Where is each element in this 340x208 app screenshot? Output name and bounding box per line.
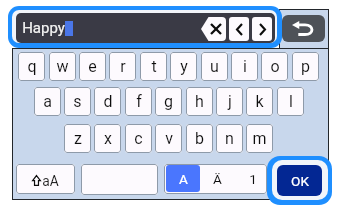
staticText: Ä bbox=[213, 171, 222, 187]
staticText: 1 bbox=[249, 171, 257, 187]
button[interactable]: Move cursor right bbox=[252, 17, 272, 41]
button[interactable]: n bbox=[216, 124, 243, 153]
button[interactable]: m bbox=[246, 124, 273, 153]
button[interactable]: c bbox=[125, 124, 152, 153]
staticText: q bbox=[27, 57, 37, 76]
staticText: k bbox=[255, 92, 264, 111]
button[interactable]: h bbox=[186, 87, 213, 116]
button[interactable]: z bbox=[64, 124, 91, 153]
staticText: o bbox=[270, 57, 280, 76]
button[interactable]: e bbox=[79, 52, 106, 81]
staticText: m bbox=[252, 129, 267, 148]
staticText: c bbox=[134, 129, 143, 148]
staticText: n bbox=[225, 129, 234, 148]
button[interactable]: Backspace bbox=[201, 17, 226, 41]
button[interactable]: v bbox=[155, 124, 182, 153]
staticText: f bbox=[136, 92, 142, 111]
button[interactable]: o bbox=[261, 52, 288, 81]
button[interactable]: f bbox=[125, 87, 152, 116]
staticText: A bbox=[179, 171, 188, 187]
button[interactable]: s bbox=[64, 87, 91, 116]
button[interactable]: u bbox=[201, 52, 228, 81]
button[interactable]: l bbox=[277, 87, 304, 116]
staticText: z bbox=[74, 129, 82, 148]
button[interactable]: a bbox=[34, 87, 61, 116]
staticText: t bbox=[151, 57, 157, 76]
staticText: i bbox=[243, 57, 247, 76]
button[interactable]: y bbox=[170, 52, 197, 81]
button[interactable]: OK bbox=[277, 165, 322, 196]
staticText: Happy bbox=[22, 19, 65, 37]
staticText: r bbox=[120, 57, 126, 76]
button[interactable]: w bbox=[49, 52, 76, 81]
button[interactable]: p bbox=[292, 52, 319, 81]
staticText: w bbox=[56, 57, 69, 76]
staticText: x bbox=[104, 129, 112, 148]
button[interactable]: Happy bbox=[16, 13, 275, 43]
staticText: b bbox=[195, 129, 204, 148]
staticText: OK bbox=[291, 173, 309, 189]
staticText: d bbox=[103, 92, 113, 111]
button[interactable]: k bbox=[246, 87, 273, 116]
button[interactable]: x bbox=[94, 124, 121, 153]
staticText: v bbox=[165, 129, 173, 148]
button[interactable] bbox=[81, 164, 158, 195]
button[interactable]: i bbox=[231, 52, 258, 81]
staticText: aA bbox=[42, 173, 59, 189]
staticText: j bbox=[228, 92, 232, 111]
staticText: u bbox=[210, 57, 219, 76]
staticText: h bbox=[195, 92, 204, 111]
staticText: p bbox=[301, 57, 310, 76]
button[interactable]: t bbox=[140, 52, 167, 81]
staticText: y bbox=[180, 57, 188, 76]
staticText: s bbox=[73, 92, 82, 111]
button[interactable]: j bbox=[216, 87, 243, 116]
button[interactable]: q bbox=[18, 52, 45, 81]
staticText: a bbox=[43, 92, 52, 111]
button[interactable]: g bbox=[155, 87, 182, 116]
button[interactable]: d bbox=[94, 87, 121, 116]
button[interactable]: b bbox=[186, 124, 213, 153]
button[interactable]: Move cursor left bbox=[229, 17, 249, 41]
button[interactable]: A bbox=[164, 164, 267, 194]
staticText: l bbox=[289, 92, 293, 111]
button[interactable]: aA bbox=[16, 164, 75, 194]
staticText: g bbox=[164, 92, 173, 111]
button[interactable]: Undo bbox=[282, 15, 325, 42]
button[interactable]: r bbox=[109, 52, 136, 81]
staticText: e bbox=[88, 57, 97, 76]
